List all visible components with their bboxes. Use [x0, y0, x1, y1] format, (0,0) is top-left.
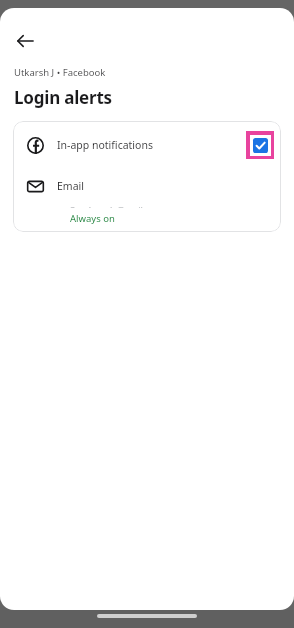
staticText: In-app notifications	[57, 138, 246, 152]
button[interactable]: In-app notifications enabled	[246, 131, 274, 159]
staticText: Login alerts	[14, 86, 112, 109]
button[interactable]: Email	[13, 168, 281, 204]
button[interactable]: In-app notifications	[13, 121, 281, 168]
staticText: Send to ujs@mail.com	[70, 204, 164, 208]
button[interactable]: Back	[8, 24, 42, 58]
staticText: Always on	[70, 212, 115, 225]
staticText: Utkarsh J • Facebook	[14, 66, 106, 79]
staticText: Email	[57, 179, 281, 193]
